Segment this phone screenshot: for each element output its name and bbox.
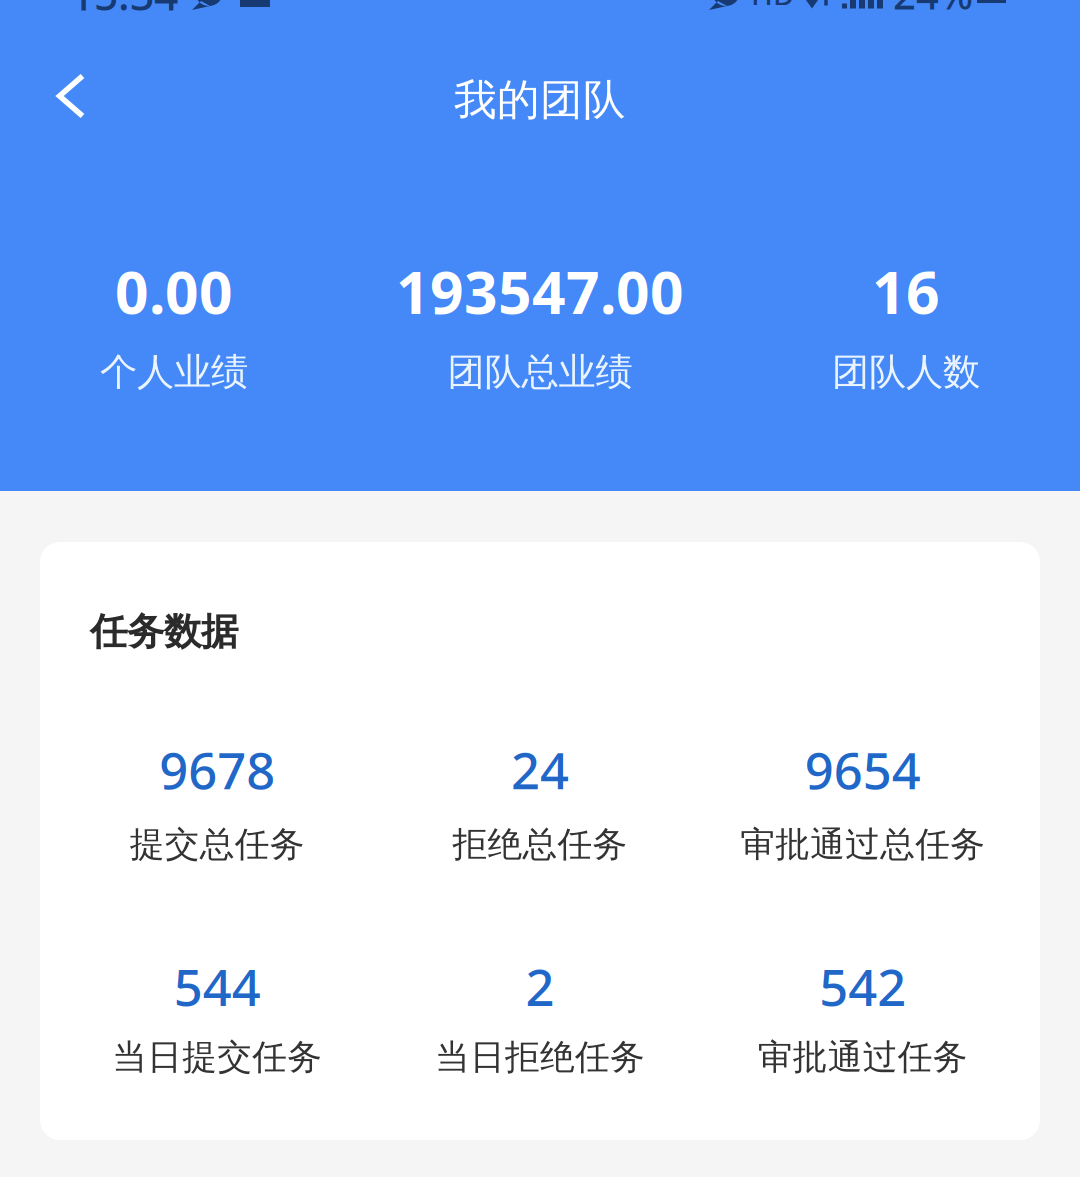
button[interactable]: Back [0, 59, 142, 141]
staticText: 当日提交任务 [112, 1036, 322, 1079]
staticText: 我的团队 [454, 74, 626, 126]
staticText: 542 [819, 953, 906, 1020]
staticText: 个人业绩 [100, 349, 248, 395]
staticText: 16 [872, 252, 940, 330]
staticText: 当日拒绝任务 [435, 1036, 645, 1079]
staticText: 提交总任务 [130, 823, 305, 866]
staticText: 15:34 [70, 0, 178, 22]
staticText: 9678 [159, 736, 275, 803]
staticText: 24 [511, 736, 569, 803]
staticText: HD [751, 0, 794, 13]
staticText: 24% [893, 0, 973, 20]
staticText: 544 [174, 953, 261, 1020]
staticText: 193547.00 [396, 252, 684, 330]
staticText: 0.00 [115, 252, 233, 330]
staticText: 9654 [805, 736, 921, 803]
staticText: 拒绝总任务 [452, 823, 627, 866]
staticText: 审批通过任务 [758, 1036, 968, 1079]
staticText: 团队人数 [832, 349, 980, 395]
staticText: 任务数据 [90, 609, 238, 655]
staticText: 团队总业绩 [447, 349, 632, 395]
staticText: 审批通过总任务 [740, 823, 985, 866]
staticText: 2 [525, 953, 554, 1020]
